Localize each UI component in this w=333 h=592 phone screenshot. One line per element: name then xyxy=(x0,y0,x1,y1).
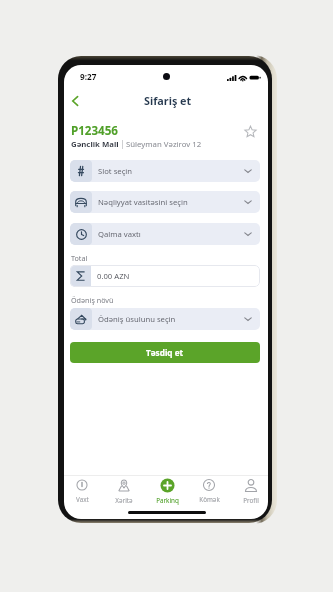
staticText: Təsdiq et xyxy=(146,347,184,358)
staticText: Vaxt xyxy=(76,495,89,504)
staticText: Sifariş et xyxy=(144,93,192,108)
button[interactable]: Təsdiq et xyxy=(70,342,260,363)
staticText: Kömək xyxy=(199,495,220,504)
button[interactable]: Qalma vaxtı xyxy=(70,223,260,245)
staticText: Xəritə xyxy=(115,496,133,505)
button[interactable]: Favourite xyxy=(241,122,260,141)
staticText: Parkinq xyxy=(156,496,179,505)
staticText: Total xyxy=(71,253,88,263)
button[interactable]: 0.00 AZN xyxy=(70,265,260,287)
staticText: Gənclik Mall xyxy=(71,139,119,150)
staticText: P123456 xyxy=(71,123,118,139)
button[interactable]: Profil xyxy=(230,479,268,505)
staticText: 0.00 AZN xyxy=(97,271,130,281)
staticText: Ödəniş üsulunu seçin xyxy=(98,314,176,324)
button[interactable]: Nəqliyyat vasitəsini seçin xyxy=(70,191,260,213)
staticText: Profil xyxy=(243,496,259,505)
staticText: Nəqliyyat vasitəsini seçin xyxy=(98,197,188,207)
button[interactable]: Kömək xyxy=(188,479,230,505)
button[interactable]: Xəritə xyxy=(103,479,145,505)
staticText: Qalma vaxtı xyxy=(98,229,141,239)
staticText: Ödəniş növü xyxy=(71,295,114,305)
button[interactable]: Ödəniş üsulunu seçin xyxy=(70,308,260,330)
button[interactable]: Parkinq xyxy=(146,479,188,505)
button[interactable]: Vaxt xyxy=(64,479,103,505)
button[interactable]: Slot seçin xyxy=(70,160,260,182)
button[interactable]: Back xyxy=(65,91,85,111)
staticText: Süleyman Vəzirov 12 xyxy=(126,139,202,150)
staticText: Slot seçin xyxy=(98,166,133,176)
staticText: 9:27 xyxy=(80,71,97,82)
